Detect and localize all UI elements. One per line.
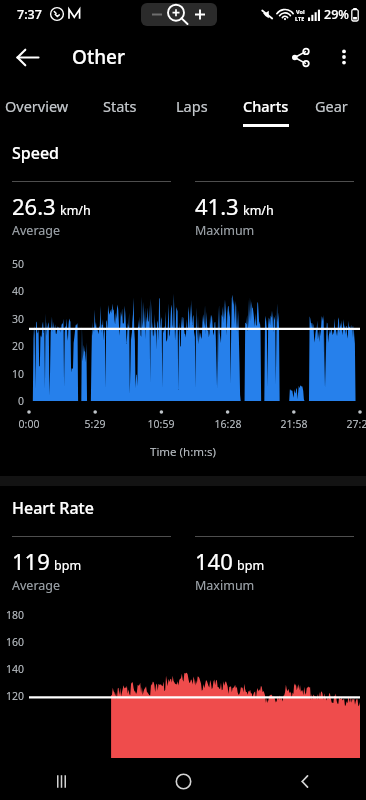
button[interactable]: Recent apps: [0, 762, 122, 800]
button[interactable]: Charts: [227, 86, 305, 131]
staticText: 26.3: [12, 191, 56, 221]
staticText: 27:27: [336, 417, 366, 431]
staticText: 29%: [324, 6, 349, 23]
staticText: 140: [6, 662, 25, 676]
button[interactable]: More options: [323, 36, 365, 78]
staticText: 160: [6, 635, 25, 649]
staticText: 40: [12, 284, 25, 298]
staticText: 7:37: [17, 6, 42, 23]
button[interactable]: Laps: [157, 86, 227, 131]
staticText: Heart Rate: [12, 497, 94, 519]
staticText: 20: [12, 339, 25, 353]
staticText: km/h: [60, 202, 91, 219]
staticText: Maximum: [195, 577, 255, 594]
staticText: 41.3: [195, 191, 239, 221]
staticText: 16:28: [204, 417, 252, 431]
staticText: Speed: [12, 142, 60, 164]
button[interactable]: Back: [4, 34, 50, 80]
staticText: bpm: [237, 557, 265, 574]
staticText: 119: [12, 546, 50, 576]
staticText: Laps: [176, 96, 208, 116]
staticText: 21:58: [270, 417, 318, 431]
staticText: LTE: [295, 15, 305, 22]
staticText: 140: [195, 546, 233, 576]
button[interactable]: Zoom controls: [141, 3, 217, 26]
staticText: Maximum: [195, 222, 255, 239]
staticText: km/h: [243, 202, 274, 219]
staticText: 180: [6, 608, 25, 622]
staticText: Vol: [296, 8, 305, 15]
staticText: Average: [12, 577, 61, 594]
staticText: Charts: [243, 96, 289, 116]
staticText: 0:00: [5, 417, 53, 431]
button[interactable]: Stats: [83, 86, 157, 131]
staticText: Stats: [103, 96, 137, 116]
button[interactable]: Back: [244, 762, 366, 800]
staticText: 5:29: [71, 417, 119, 431]
staticText: 0: [18, 394, 25, 408]
staticText: 120: [6, 689, 25, 703]
staticText: Average: [12, 222, 61, 239]
button[interactable]: Home: [122, 762, 244, 800]
staticText: Time (h:m:s): [150, 444, 217, 460]
staticText: Overview: [5, 96, 69, 116]
staticText: Other: [72, 44, 126, 70]
staticText: Gear: [315, 96, 348, 116]
button[interactable]: Gear: [305, 86, 357, 131]
staticText: 30: [12, 312, 25, 326]
staticText: 10:59: [137, 417, 185, 431]
staticText: 10: [12, 367, 25, 381]
staticText: bpm: [54, 557, 82, 574]
button[interactable]: Share: [277, 34, 323, 80]
button[interactable]: Overview: [0, 86, 83, 131]
staticText: 50: [12, 257, 25, 271]
